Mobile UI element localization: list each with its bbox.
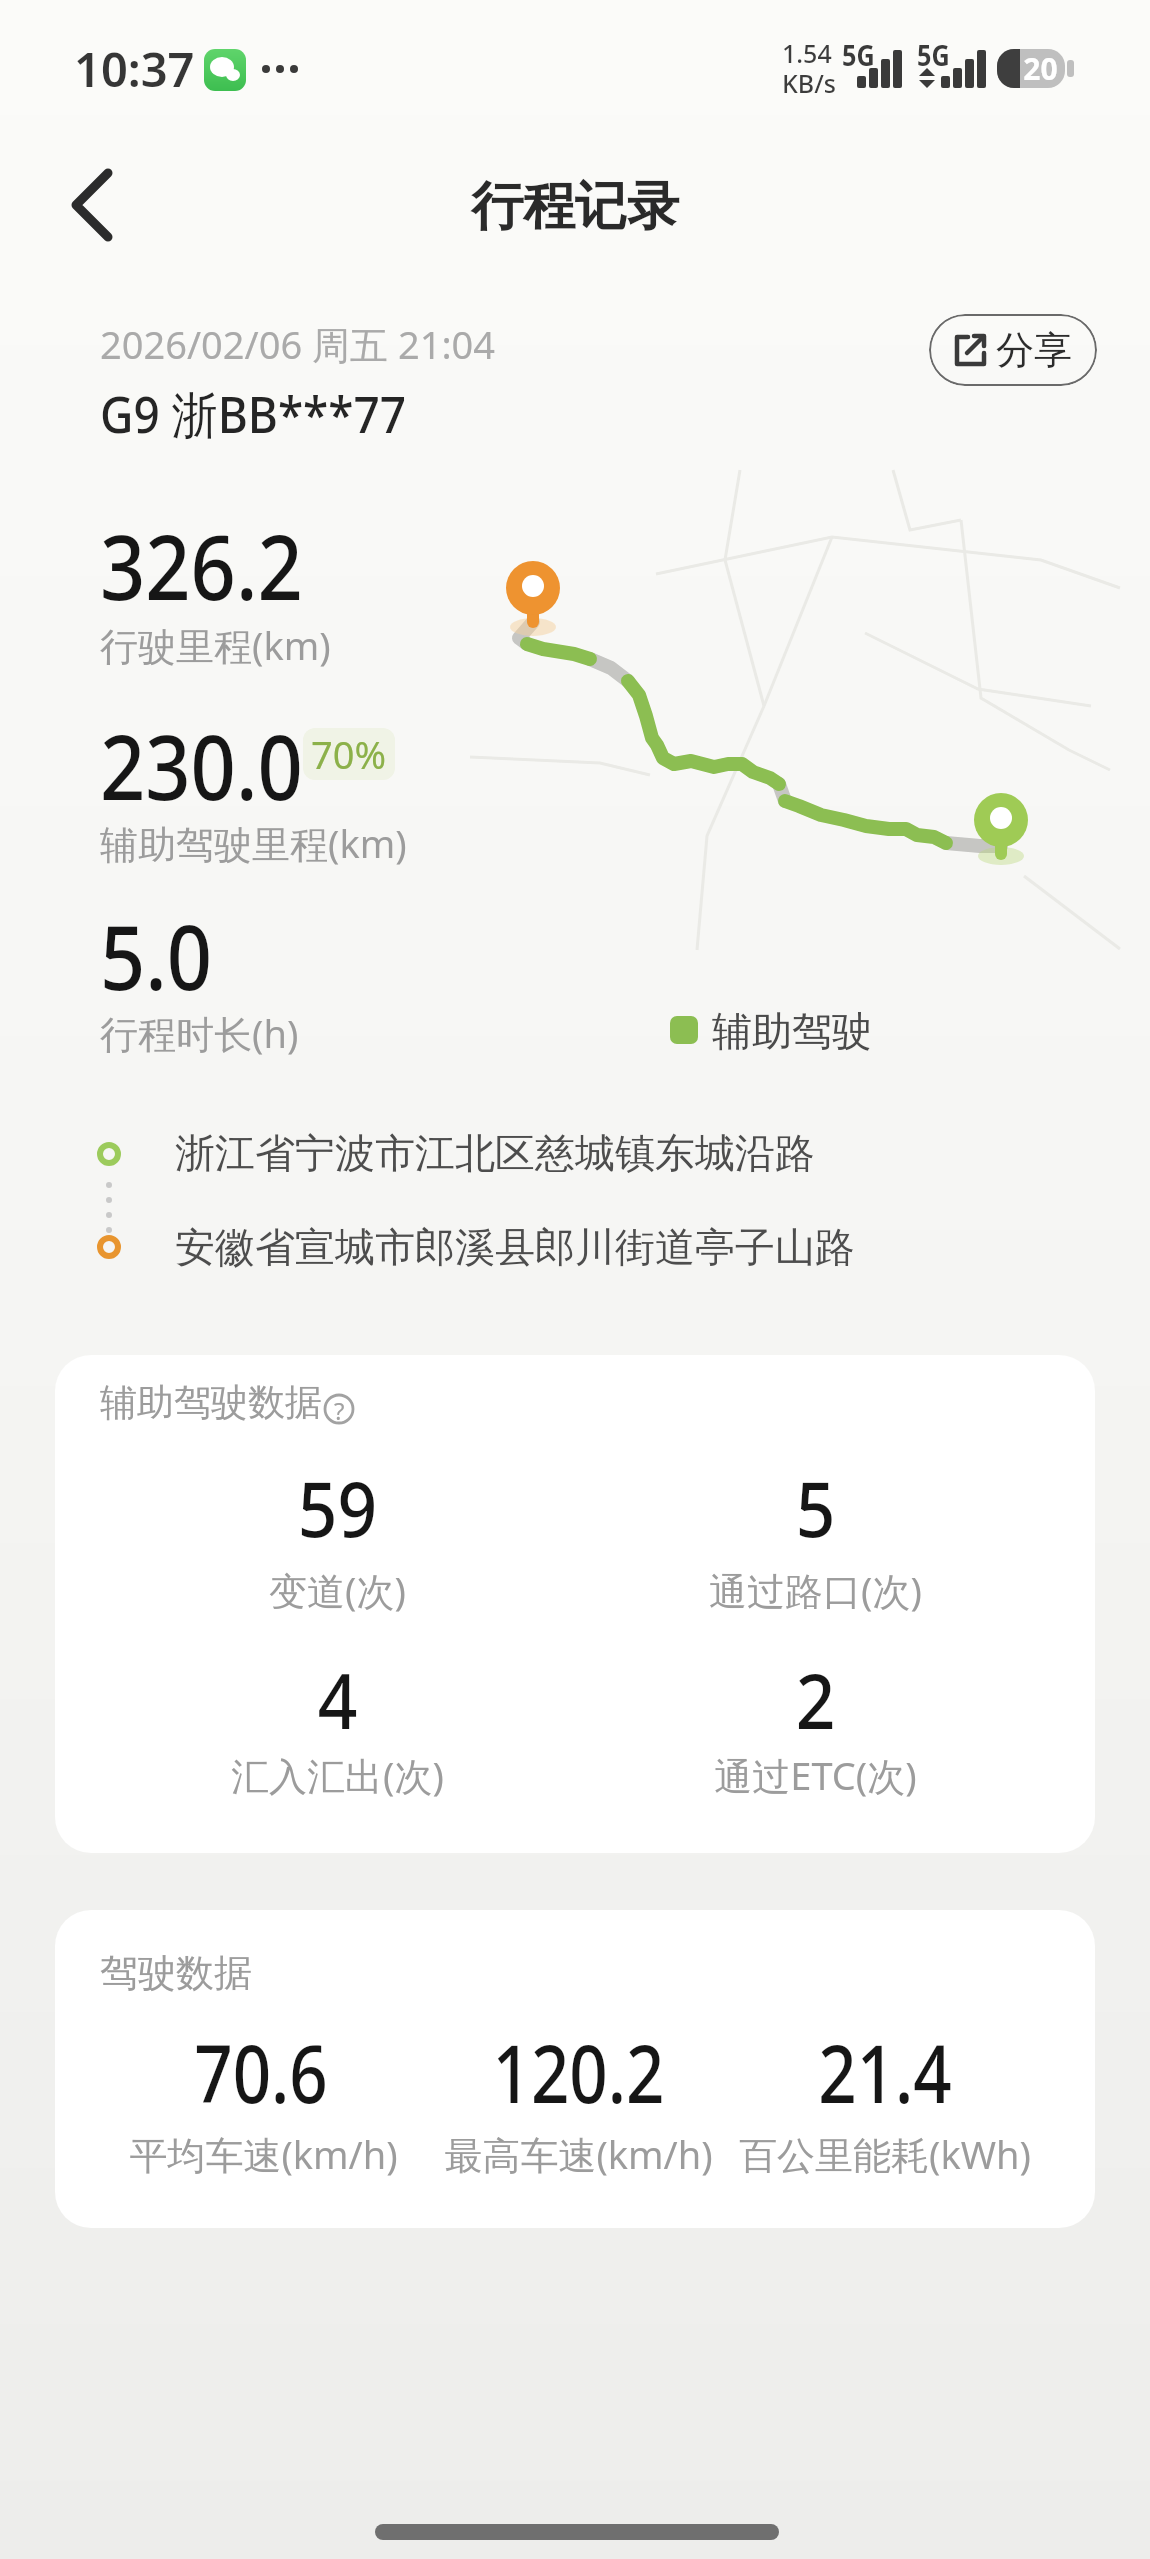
staticText: 驾驶数据	[100, 1949, 252, 1997]
staticText: 21.4	[818, 2017, 952, 2112]
staticText: 通过ETC(次)	[714, 1749, 917, 1799]
staticText: 分享	[996, 326, 1072, 374]
staticText: 行程记录	[471, 174, 679, 240]
staticText: 浙江省宁波市江北区慈城镇东城沿路	[175, 1128, 815, 1178]
staticText: 辅助驾驶	[712, 1006, 872, 1056]
staticText: 5G	[842, 36, 875, 74]
staticText: 平均车速(km/h)	[129, 2128, 398, 2178]
staticText: 百公里能耗(kWh)	[739, 2128, 1031, 2178]
staticText: 行程时长(h)	[100, 1007, 299, 1059]
staticText: 5.0	[100, 895, 213, 1016]
staticText: 120.2	[492, 2017, 665, 2112]
staticText: 70.6	[194, 2017, 328, 2112]
staticText: KB/s	[782, 66, 836, 100]
staticText: 安徽省宣城市郎溪县郎川街道亭子山路	[175, 1222, 855, 1272]
staticText: 汇入汇出(次)	[231, 1749, 444, 1799]
staticText: ?	[334, 1394, 345, 1424]
staticText: 最高车速(km/h)	[444, 2128, 713, 2178]
staticText: 5G	[917, 36, 950, 74]
staticText: 20	[1023, 48, 1058, 88]
staticText: 行驶里程(km)	[100, 619, 331, 671]
staticText: 变道(次)	[269, 1564, 406, 1614]
staticText: 4	[317, 1647, 358, 1742]
staticText: 70%	[311, 728, 387, 780]
staticText: 230.0	[100, 705, 303, 826]
staticText: 5	[795, 1455, 836, 1550]
staticText: 326.2	[100, 505, 303, 626]
button[interactable]: ?	[324, 1394, 354, 1424]
staticText: 10:37	[74, 37, 195, 101]
staticText: 59	[297, 1455, 378, 1550]
staticText: 通过路口(次)	[709, 1564, 922, 1614]
staticText: 2	[795, 1647, 836, 1742]
staticText: 2026/02/06 周五 21:04	[100, 318, 496, 370]
staticText: 辅助驾驶里程(km)	[100, 817, 407, 869]
staticText: 辅助驾驶数据	[100, 1379, 322, 1426]
button[interactable]: 分享	[929, 314, 1097, 386]
staticText: G9 浙BB***77	[100, 380, 406, 448]
button[interactable]	[56, 165, 136, 245]
staticText: 1.54	[782, 36, 832, 70]
